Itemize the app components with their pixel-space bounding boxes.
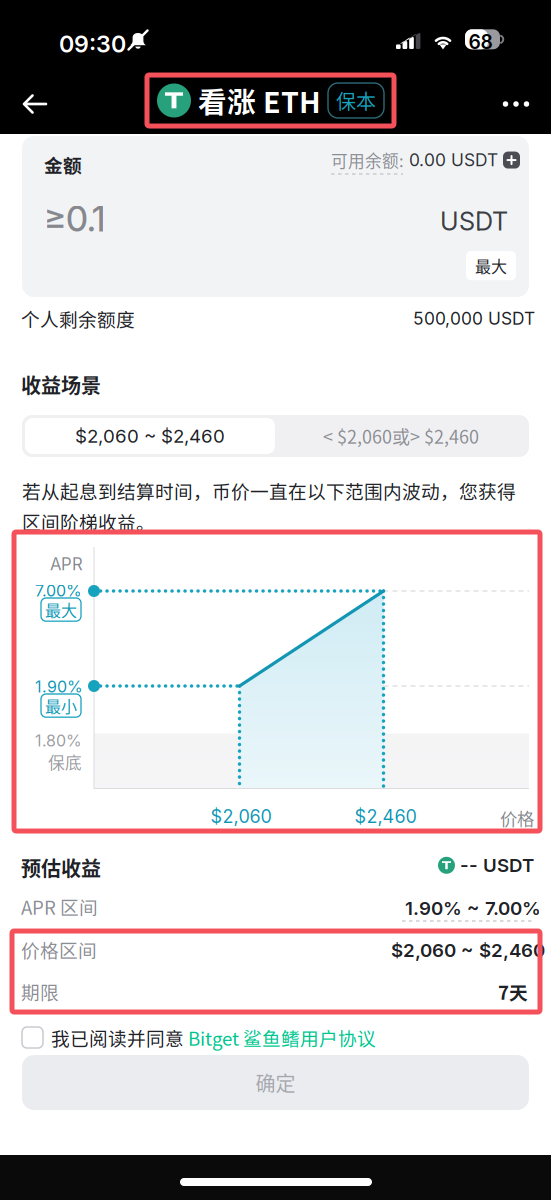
staticText: 最大 [45,598,77,621]
button[interactable]: 确定 [22,1055,529,1110]
staticText: 看涨 ETH [191,80,328,121]
button[interactable]: $2,060 ~ $2,460 [25,418,275,454]
staticText: 7天 [498,978,528,1005]
staticText: $2,060 [210,805,271,827]
staticText: $2,060 ~ $2,460 [75,425,225,447]
staticText: 可用余额: [331,148,404,172]
staticText: 区间阶梯收益。 [22,508,155,535]
staticText: 0.00 USDT [404,150,503,171]
staticText: 若从起息到结算时间，币价一直在以下范围内波动，您获得 [22,477,516,504]
staticText: 68 [468,30,492,54]
staticText: 确定 [255,1068,295,1097]
staticText: 最大 [475,254,507,277]
staticText: 7.00% [35,581,82,600]
button[interactable]: 最大 [466,251,516,280]
button[interactable]: Bitget 鲨鱼鳍用户协议 [188,1024,376,1051]
staticText: 价格 [500,805,534,831]
staticText: 我已阅读并同意 [43,1024,188,1051]
staticText: 500,000 USDT [413,308,535,329]
staticText: 预估收益 [21,853,101,882]
staticText: 期限 [21,978,59,1005]
staticText: $2,060 ~ $2,460 [391,939,545,962]
staticText: 保底 [48,750,82,774]
staticText: ≥0.1 [44,198,105,240]
staticText: 收益场景 [21,370,101,399]
staticText: 保本 [336,86,376,115]
staticText: 1.80% [35,731,82,750]
staticText: APR 区间 [21,893,98,920]
staticText: APR [50,554,83,574]
staticText: 最小 [45,694,77,717]
staticText: USDT [440,206,508,237]
button[interactable]: Back [9,78,61,130]
staticText: 09:30 [59,30,126,58]
staticText: -- USDT [455,854,534,877]
button[interactable]: < $2,060或> $2,460 [276,418,526,454]
staticText: 价格区间 [21,936,97,963]
staticText: 1.90% [35,677,83,696]
button[interactable]: Agree to terms [22,1027,43,1048]
staticText: 个人剩余额度 [21,305,135,332]
staticText: < $2,060或> $2,460 [323,423,479,449]
button[interactable]: 看涨 ETH [147,75,394,126]
staticText: 1.90% ~ 7.00% [405,897,541,920]
button[interactable]: More [490,78,542,130]
staticText: Bitget 鲨鱼鳍用户协议 [188,1024,376,1051]
staticText: 金额 [44,151,82,178]
staticText: $2,460 [354,805,416,827]
